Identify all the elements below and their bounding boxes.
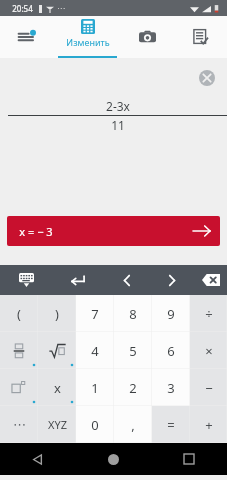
button[interactable]: 7 xyxy=(76,295,114,332)
button[interactable]: − xyxy=(190,369,227,406)
staticText: ÷ xyxy=(205,305,213,323)
button[interactable]: Home xyxy=(75,443,151,475)
button[interactable]: XYZ xyxy=(38,406,76,443)
staticText: 1 xyxy=(91,379,99,397)
button[interactable]: Menu xyxy=(0,16,54,58)
staticText: 4 xyxy=(91,342,99,360)
staticText: 3 xyxy=(167,379,175,397)
button[interactable]: Back xyxy=(0,443,75,475)
button[interactable]: Solutions xyxy=(174,16,227,58)
button[interactable]: 6 xyxy=(152,332,190,369)
button[interactable]: 2 xyxy=(114,369,152,406)
button[interactable]: Camera xyxy=(121,16,174,58)
staticText: − xyxy=(205,379,213,397)
button[interactable]: 9 xyxy=(152,295,190,332)
staticText: 7 xyxy=(91,305,99,323)
button[interactable]: x = − 3 xyxy=(7,216,220,246)
staticText: + xyxy=(205,416,213,434)
staticText: XYZ xyxy=(48,417,67,432)
button[interactable]: 3 xyxy=(152,369,190,406)
button[interactable]: Move left xyxy=(104,265,149,295)
staticText: 6 xyxy=(167,342,175,360)
button[interactable]: = xyxy=(152,406,190,443)
button[interactable]: Hide keyboard xyxy=(0,265,52,295)
button[interactable]: More xyxy=(0,406,38,443)
staticText: × xyxy=(205,342,213,360)
button[interactable]: 5 xyxy=(114,332,152,369)
button[interactable]: , xyxy=(114,406,152,443)
staticText: , xyxy=(131,416,135,434)
button[interactable]: 0 xyxy=(76,406,114,443)
button[interactable]: Clear xyxy=(196,67,218,89)
button[interactable]: Enter xyxy=(52,265,104,295)
button[interactable]: × xyxy=(190,332,227,369)
staticText: = xyxy=(167,416,175,434)
button[interactable]: Move right xyxy=(149,265,194,295)
button[interactable]: + xyxy=(190,406,227,443)
button[interactable]: ) xyxy=(38,295,76,332)
staticText: ) xyxy=(55,305,59,323)
staticText: x xyxy=(54,379,61,397)
staticText: ⋯ xyxy=(13,417,26,432)
button[interactable]: x xyxy=(38,369,76,406)
button[interactable]: Backspace xyxy=(194,265,227,295)
button[interactable]: Recents xyxy=(151,443,227,475)
staticText: ( xyxy=(17,305,21,323)
staticText: 2-3x xyxy=(106,98,130,114)
button[interactable]: Square root xyxy=(38,332,76,369)
button[interactable]: 4 xyxy=(76,332,114,369)
button[interactable]: ( xyxy=(0,295,38,332)
staticText: x = − 3 xyxy=(19,224,53,239)
staticText: 0 xyxy=(91,416,99,434)
staticText: 5 xyxy=(129,342,137,360)
staticText: 20:54 xyxy=(12,3,33,14)
button[interactable]: Изменить xyxy=(54,16,121,58)
button[interactable]: Power xyxy=(0,369,38,406)
staticText: 8 xyxy=(129,305,137,323)
staticText: Изменить xyxy=(66,36,110,48)
staticText: ⋯ xyxy=(57,4,65,13)
button[interactable]: 1 xyxy=(76,369,114,406)
staticText: 9 xyxy=(167,305,175,323)
staticText: 11 xyxy=(111,117,125,133)
button[interactable]: 8 xyxy=(114,295,152,332)
button[interactable]: Fraction xyxy=(0,332,38,369)
button[interactable]: ÷ xyxy=(190,295,227,332)
staticText: 2 xyxy=(129,379,137,397)
